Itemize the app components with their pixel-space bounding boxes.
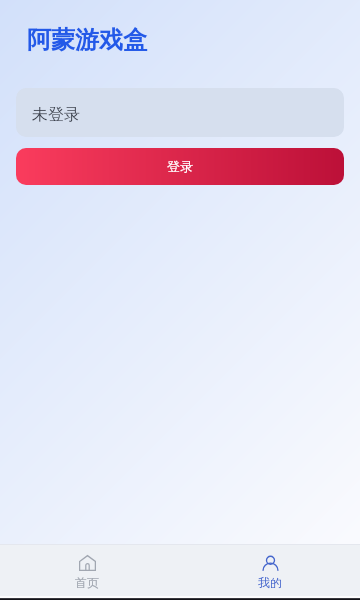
staticText: 未登录 <box>32 105 80 125</box>
staticText: 我的 <box>258 575 282 590</box>
button[interactable]: 未登录 <box>16 88 344 137</box>
staticText: 登录 <box>167 158 193 174</box>
button[interactable]: 登录 <box>16 148 344 185</box>
button[interactable]: 首页 <box>0 544 174 596</box>
staticText: 阿蒙游戏盒 <box>27 25 147 55</box>
staticText: 首页 <box>75 575 99 590</box>
button[interactable]: 我的 <box>180 544 360 596</box>
